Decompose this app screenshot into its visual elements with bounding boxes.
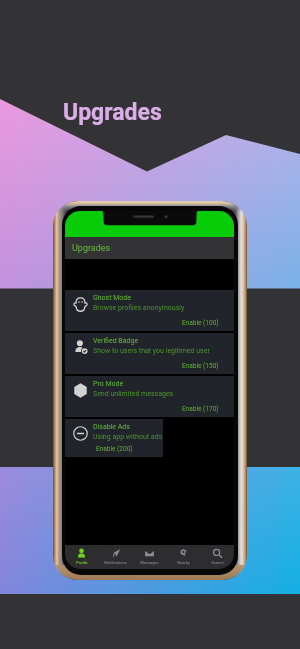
staticText: Show to users that you legitimed user (93, 347, 210, 355)
button[interactable]: Profile (65, 545, 98, 569)
button[interactable]: Verified Badge (65, 333, 234, 374)
staticText: Upgrades (72, 243, 111, 254)
button[interactable]: Messages (132, 545, 166, 569)
staticText: Send unlimited messages (93, 390, 174, 398)
staticText: Messages (140, 560, 159, 565)
staticText: Profile (76, 560, 88, 565)
staticText: Enable (150) (182, 362, 219, 370)
staticText: Verified Badge (93, 337, 139, 345)
button[interactable]: Nearby (166, 545, 200, 569)
staticText: Search (211, 560, 224, 565)
staticText: Ghost Mode (93, 294, 132, 302)
staticText: Nearby (177, 560, 190, 565)
staticText: Upgrades (63, 99, 162, 126)
staticText: Enable (200) (96, 445, 133, 453)
button[interactable]: Ghost Mode (65, 290, 234, 331)
staticText: Using app without ads (93, 433, 163, 441)
staticText: Disable Ads (93, 423, 130, 431)
staticText: Notifications (104, 560, 127, 565)
button[interactable]: Disable Ads (65, 419, 163, 457)
staticText: Enable (170) (182, 405, 219, 413)
button[interactable]: Search (200, 545, 234, 569)
staticText: Pro Mode (93, 380, 124, 388)
button[interactable]: Pro Mode (65, 376, 234, 417)
button[interactable]: Notifications (98, 545, 132, 569)
staticText: Browse profiles anonymously (93, 304, 185, 312)
button[interactable]: Upgrades (65, 237, 234, 259)
staticText: Enable (100) (182, 319, 219, 327)
